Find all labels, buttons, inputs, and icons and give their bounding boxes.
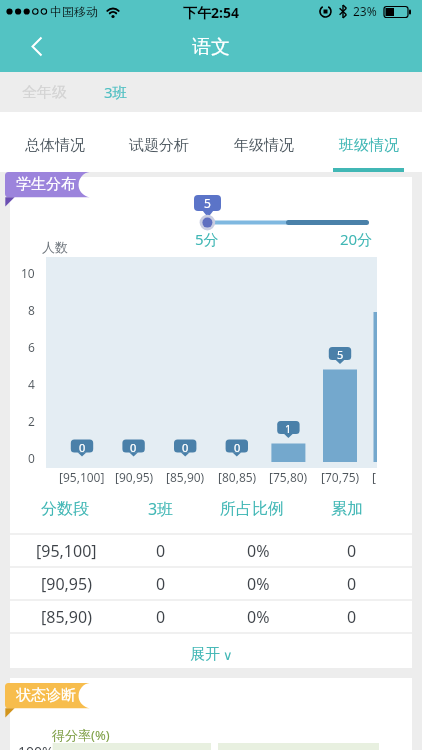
button[interactable]: 展开 [190, 645, 233, 664]
staticText: 展开 [190, 645, 220, 664]
staticText: 累加 [331, 499, 363, 519]
staticText: 1 [285, 421, 292, 434]
staticText: [90,95) [41, 573, 92, 595]
button[interactable] [0, 22, 74, 72]
staticText: 0 [156, 540, 166, 562]
staticText: 100% [18, 742, 54, 750]
staticText: 8 [28, 302, 35, 318]
staticText: 0 [347, 540, 357, 562]
staticText: 语文 [192, 35, 230, 59]
staticText: [75,80) [269, 469, 308, 485]
button[interactable]: 年级情况 [224, 115, 304, 175]
staticText: 0 [182, 440, 189, 453]
button[interactable]: 班级情况 [329, 115, 409, 175]
staticText: 学生分布 [16, 175, 76, 194]
staticText: 0 [347, 606, 357, 628]
staticText: 下午2:54 [183, 3, 239, 22]
staticText: 5分 [195, 229, 219, 249]
staticText: 0% [247, 606, 270, 628]
staticText: 3班 [148, 498, 174, 520]
button[interactable]: 试题分析 [119, 115, 199, 175]
staticText: 状态诊断 [16, 686, 76, 705]
staticText: [80,85) [218, 469, 257, 485]
staticText: 23% [353, 3, 377, 19]
staticText: 0 [347, 573, 357, 595]
staticText: 5 [204, 195, 211, 211]
staticText: [ [372, 469, 376, 485]
button[interactable]: 总体情况 [15, 115, 95, 175]
button[interactable]: 全年级 [22, 83, 67, 102]
staticText: 4 [28, 376, 35, 392]
staticText: 分数段 [41, 499, 89, 519]
staticText: [95,100] [59, 469, 105, 485]
staticText: 6 [28, 339, 35, 355]
staticText: [90,95) [115, 469, 154, 485]
staticText: 10 [21, 265, 35, 281]
staticText: 试题分析 [129, 136, 189, 155]
staticText: 得分率(%) [52, 726, 110, 744]
staticText: [70,75) [321, 469, 360, 485]
staticText: 所占比例 [220, 499, 284, 519]
staticText: ∨ [223, 648, 233, 663]
staticText: 0 [234, 440, 241, 453]
staticText: 总体情况 [25, 136, 85, 155]
staticText: 0 [156, 606, 166, 628]
staticText: 20分 [340, 229, 373, 249]
staticText: 0 [28, 450, 35, 466]
staticText: 0 [79, 440, 86, 453]
staticText: 中国移动 [50, 4, 98, 19]
staticText: [95,100] [36, 540, 97, 562]
staticText: 班级情况 [339, 136, 399, 155]
staticText: 人数 [42, 239, 68, 255]
staticText: 5 [337, 347, 344, 360]
staticText: 2 [28, 413, 35, 429]
staticText: 0 [130, 440, 137, 453]
staticText: 0 [156, 573, 166, 595]
staticText: 0% [247, 573, 270, 595]
staticText: [85,90) [41, 606, 92, 628]
staticText: 年级情况 [234, 136, 294, 155]
staticText: [85,90) [166, 469, 205, 485]
staticText: 0% [247, 540, 270, 562]
button[interactable]: 3班 [104, 82, 128, 102]
